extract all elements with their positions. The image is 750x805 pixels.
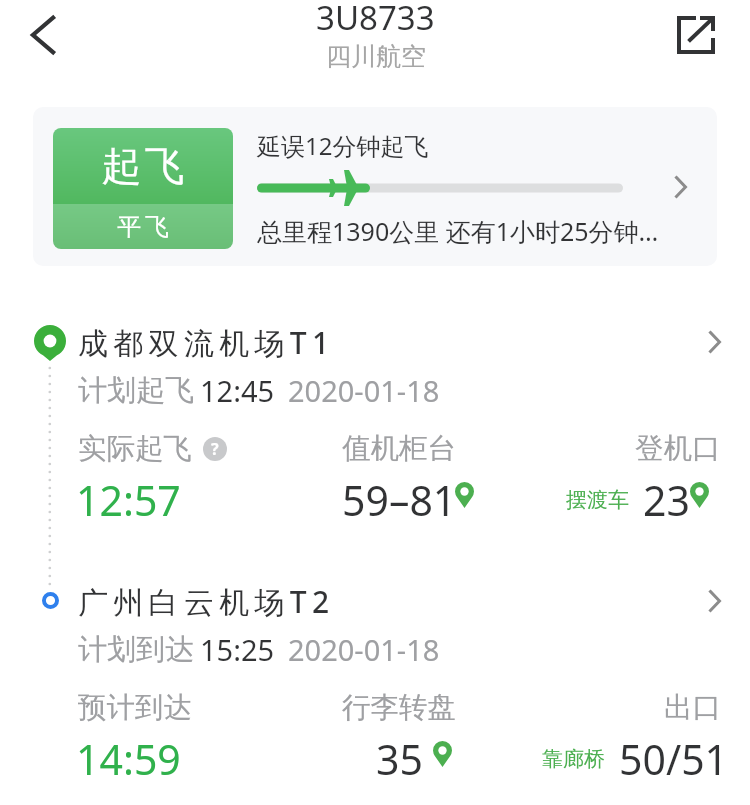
- staticText: 14:59: [76, 731, 181, 787]
- staticText: 23: [643, 472, 690, 528]
- button[interactable]: Help: [203, 437, 227, 461]
- staticText: 计划起飞: [78, 372, 194, 409]
- staticText: 实际起飞: [78, 431, 192, 467]
- staticText: 延误12分钟起飞: [257, 129, 429, 162]
- staticText: 计划到达: [78, 631, 194, 668]
- staticText: 靠廊桥: [542, 746, 605, 772]
- button[interactable]: 起飞: [33, 107, 717, 266]
- staticText: 3U8733: [316, 0, 435, 40]
- staticText: 值机柜台: [342, 431, 456, 467]
- staticText: 预计到达: [78, 690, 192, 726]
- staticText: 平飞: [115, 212, 171, 242]
- staticText: 59–81: [342, 472, 457, 528]
- button[interactable]: Share: [667, 6, 725, 64]
- staticText: 2020-01-18: [288, 371, 440, 410]
- staticText: 四川航空: [326, 41, 426, 72]
- staticText: 12:45: [200, 371, 275, 410]
- staticText: 总里程1390公里 还有1小时25分钟…: [257, 214, 659, 248]
- staticText: 出口: [664, 690, 721, 726]
- staticText: 50/51: [619, 731, 729, 787]
- staticText: 35: [376, 731, 423, 787]
- button[interactable]: Flight details: [661, 167, 701, 207]
- staticText: ?: [211, 438, 219, 460]
- staticText: 15:25: [200, 630, 275, 669]
- button[interactable]: 成都双流机场T1: [0, 318, 750, 366]
- staticText: 广州白云机场T2: [78, 581, 695, 622]
- staticText: 摆渡车: [566, 487, 629, 513]
- staticText: 行李转盘: [342, 690, 456, 726]
- button[interactable]: Back: [13, 5, 73, 65]
- button[interactable]: 广州白云机场T2: [0, 577, 750, 625]
- staticText: 起飞: [100, 141, 186, 191]
- staticText: 2020-01-18: [288, 630, 440, 669]
- staticText: 登机口: [635, 431, 721, 467]
- staticText: 成都双流机场T1: [78, 322, 695, 363]
- staticText: 12:57: [76, 472, 181, 528]
